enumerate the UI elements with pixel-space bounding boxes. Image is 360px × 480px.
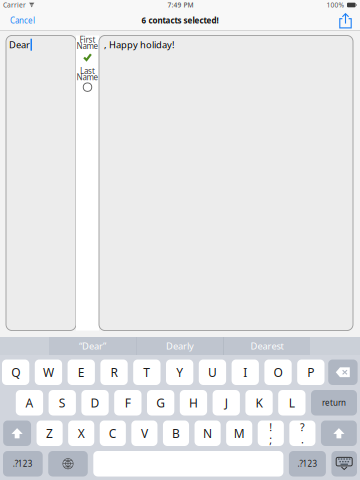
staticText: 6 contacts selected! bbox=[141, 15, 218, 26]
button[interactable]: I bbox=[232, 359, 259, 385]
staticText: L bbox=[289, 395, 295, 411]
button[interactable]: N bbox=[195, 420, 221, 446]
button[interactable]: Shift bbox=[321, 420, 357, 446]
button[interactable]: D bbox=[81, 390, 109, 415]
staticText: ; bbox=[269, 432, 272, 446]
button[interactable]: .?123 bbox=[3, 451, 43, 476]
staticText: J bbox=[225, 395, 228, 411]
button[interactable]: O bbox=[264, 359, 292, 385]
button[interactable]: Y bbox=[166, 359, 193, 385]
staticText: . bbox=[301, 432, 304, 446]
staticText: ! bbox=[269, 420, 272, 434]
staticText: First bbox=[79, 34, 95, 45]
staticText: Cancel bbox=[10, 15, 35, 26]
staticText: P bbox=[307, 364, 314, 380]
staticText: D bbox=[90, 395, 99, 411]
staticText: 7:49 PM bbox=[167, 1, 193, 9]
button[interactable]: P bbox=[297, 359, 324, 385]
staticText: H bbox=[189, 395, 198, 411]
button[interactable]: Next keyboard bbox=[48, 451, 88, 476]
staticText: A bbox=[25, 395, 33, 411]
button[interactable]: Share bbox=[333, 10, 360, 31]
button[interactable]: U bbox=[199, 359, 226, 385]
staticText: X bbox=[78, 425, 85, 441]
staticText: .?123 bbox=[13, 458, 33, 469]
staticText: N bbox=[203, 425, 212, 441]
staticText: E bbox=[78, 364, 85, 380]
staticText: W bbox=[43, 364, 54, 380]
button[interactable]: M bbox=[226, 420, 252, 446]
staticText: return bbox=[322, 397, 346, 408]
button[interactable]: X bbox=[68, 420, 94, 446]
button[interactable]: F bbox=[114, 390, 141, 415]
staticText: “Dear” bbox=[79, 340, 106, 352]
staticText: , Happy holiday! bbox=[104, 38, 175, 51]
staticText: C bbox=[109, 425, 117, 441]
staticText: I bbox=[243, 364, 247, 380]
button[interactable]: H bbox=[180, 390, 207, 415]
staticText: T bbox=[143, 364, 150, 380]
button[interactable]: K bbox=[245, 390, 273, 415]
staticText: O bbox=[274, 364, 283, 380]
button[interactable]: R bbox=[100, 359, 128, 385]
button[interactable]: Dismiss keyboard bbox=[331, 451, 357, 476]
staticText: Name bbox=[76, 72, 98, 82]
button[interactable]: ! bbox=[258, 420, 284, 446]
staticText: S bbox=[59, 395, 66, 411]
staticText: .?123 bbox=[297, 458, 317, 469]
staticText: U bbox=[208, 364, 217, 380]
button[interactable]: “Dear” bbox=[49, 337, 136, 355]
staticText: Last bbox=[80, 66, 95, 76]
button[interactable]: E bbox=[68, 359, 95, 385]
staticText: Z bbox=[46, 425, 53, 441]
button[interactable]: Dearest bbox=[224, 337, 310, 355]
button[interactable]: Delete bbox=[328, 359, 358, 385]
button[interactable]: J bbox=[213, 390, 240, 415]
button[interactable]: return bbox=[311, 390, 357, 415]
staticText: Dearest bbox=[250, 340, 283, 352]
staticText: Y bbox=[176, 364, 183, 380]
button[interactable]: C bbox=[100, 420, 126, 446]
button[interactable]: S bbox=[49, 390, 76, 415]
button[interactable]: T bbox=[133, 359, 160, 385]
staticText: F bbox=[125, 395, 131, 411]
button[interactable]: W bbox=[35, 359, 62, 385]
staticText: 100% bbox=[326, 1, 344, 9]
staticText: B bbox=[172, 425, 180, 441]
staticText: Q bbox=[11, 364, 20, 380]
staticText: R bbox=[110, 364, 117, 380]
staticText: G bbox=[156, 395, 165, 411]
staticText: V bbox=[141, 425, 148, 441]
button[interactable]: V bbox=[131, 420, 157, 446]
staticText: Dearly bbox=[166, 340, 194, 352]
button[interactable]: L bbox=[278, 390, 305, 415]
staticText: Carrier bbox=[3, 1, 26, 9]
button[interactable]: Q bbox=[2, 359, 29, 385]
staticText: Name bbox=[76, 40, 98, 51]
button[interactable]: ? bbox=[289, 420, 315, 446]
button[interactable]: Cancel bbox=[0, 10, 41, 31]
button[interactable]: Dearly bbox=[137, 337, 223, 355]
button[interactable]: B bbox=[163, 420, 189, 446]
button[interactable]: A bbox=[16, 390, 43, 415]
button[interactable]: .?123 bbox=[289, 451, 326, 476]
staticText: Dear bbox=[9, 38, 30, 51]
button[interactable]: Z bbox=[37, 420, 63, 446]
button[interactable]: G bbox=[147, 390, 174, 415]
button[interactable]: Shift bbox=[3, 420, 31, 446]
staticText: K bbox=[256, 395, 263, 411]
staticText: ? bbox=[300, 420, 305, 434]
staticText: M bbox=[234, 425, 245, 441]
